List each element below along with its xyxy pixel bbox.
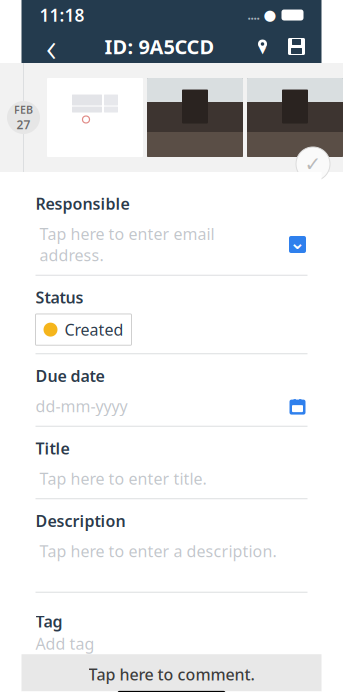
staticText: Responsible bbox=[35, 193, 129, 214]
button[interactable]: Location bbox=[245, 29, 279, 63]
button[interactable]: Approve bbox=[291, 142, 335, 186]
staticText: ▼ bbox=[259, 45, 266, 55]
button[interactable]: Back bbox=[29, 29, 73, 63]
staticText: ⌄ bbox=[289, 232, 305, 253]
button[interactable]: Document photo bbox=[47, 78, 143, 157]
staticText: .... bbox=[247, 7, 259, 23]
staticText: Created bbox=[64, 319, 123, 340]
staticText: Tag bbox=[35, 611, 62, 632]
button[interactable]: Photo bbox=[247, 78, 343, 157]
staticText: 11:18 bbox=[39, 3, 84, 26]
staticText: Status bbox=[35, 287, 83, 308]
staticText: Tap here to enter title. bbox=[39, 468, 206, 489]
button[interactable]: Photo bbox=[147, 78, 243, 157]
staticText: ‹ bbox=[46, 20, 57, 73]
staticText: Add tag bbox=[35, 633, 94, 654]
staticText: dd-mm-yyyy bbox=[35, 395, 127, 417]
staticText: 27 bbox=[16, 117, 30, 132]
staticText: Tap here to enter email address. bbox=[39, 223, 214, 266]
staticText: Title bbox=[35, 438, 69, 459]
button[interactable]: Save bbox=[279, 29, 313, 63]
staticText: ID: 9A5CCD bbox=[104, 33, 214, 60]
button[interactable]: Add tag bbox=[35, 633, 307, 654]
staticText: Description bbox=[35, 510, 125, 531]
button[interactable]: Created bbox=[35, 314, 131, 345]
staticText: Tap here to comment. bbox=[88, 664, 254, 685]
button[interactable]: Tap here to comment. bbox=[21, 651, 321, 685]
staticText: Tap here to enter a description. bbox=[39, 540, 276, 562]
staticText: Due date bbox=[35, 365, 104, 386]
staticText: ✓ bbox=[304, 153, 321, 175]
staticText: FEB bbox=[14, 102, 33, 117]
staticText: ● bbox=[263, 7, 276, 23]
